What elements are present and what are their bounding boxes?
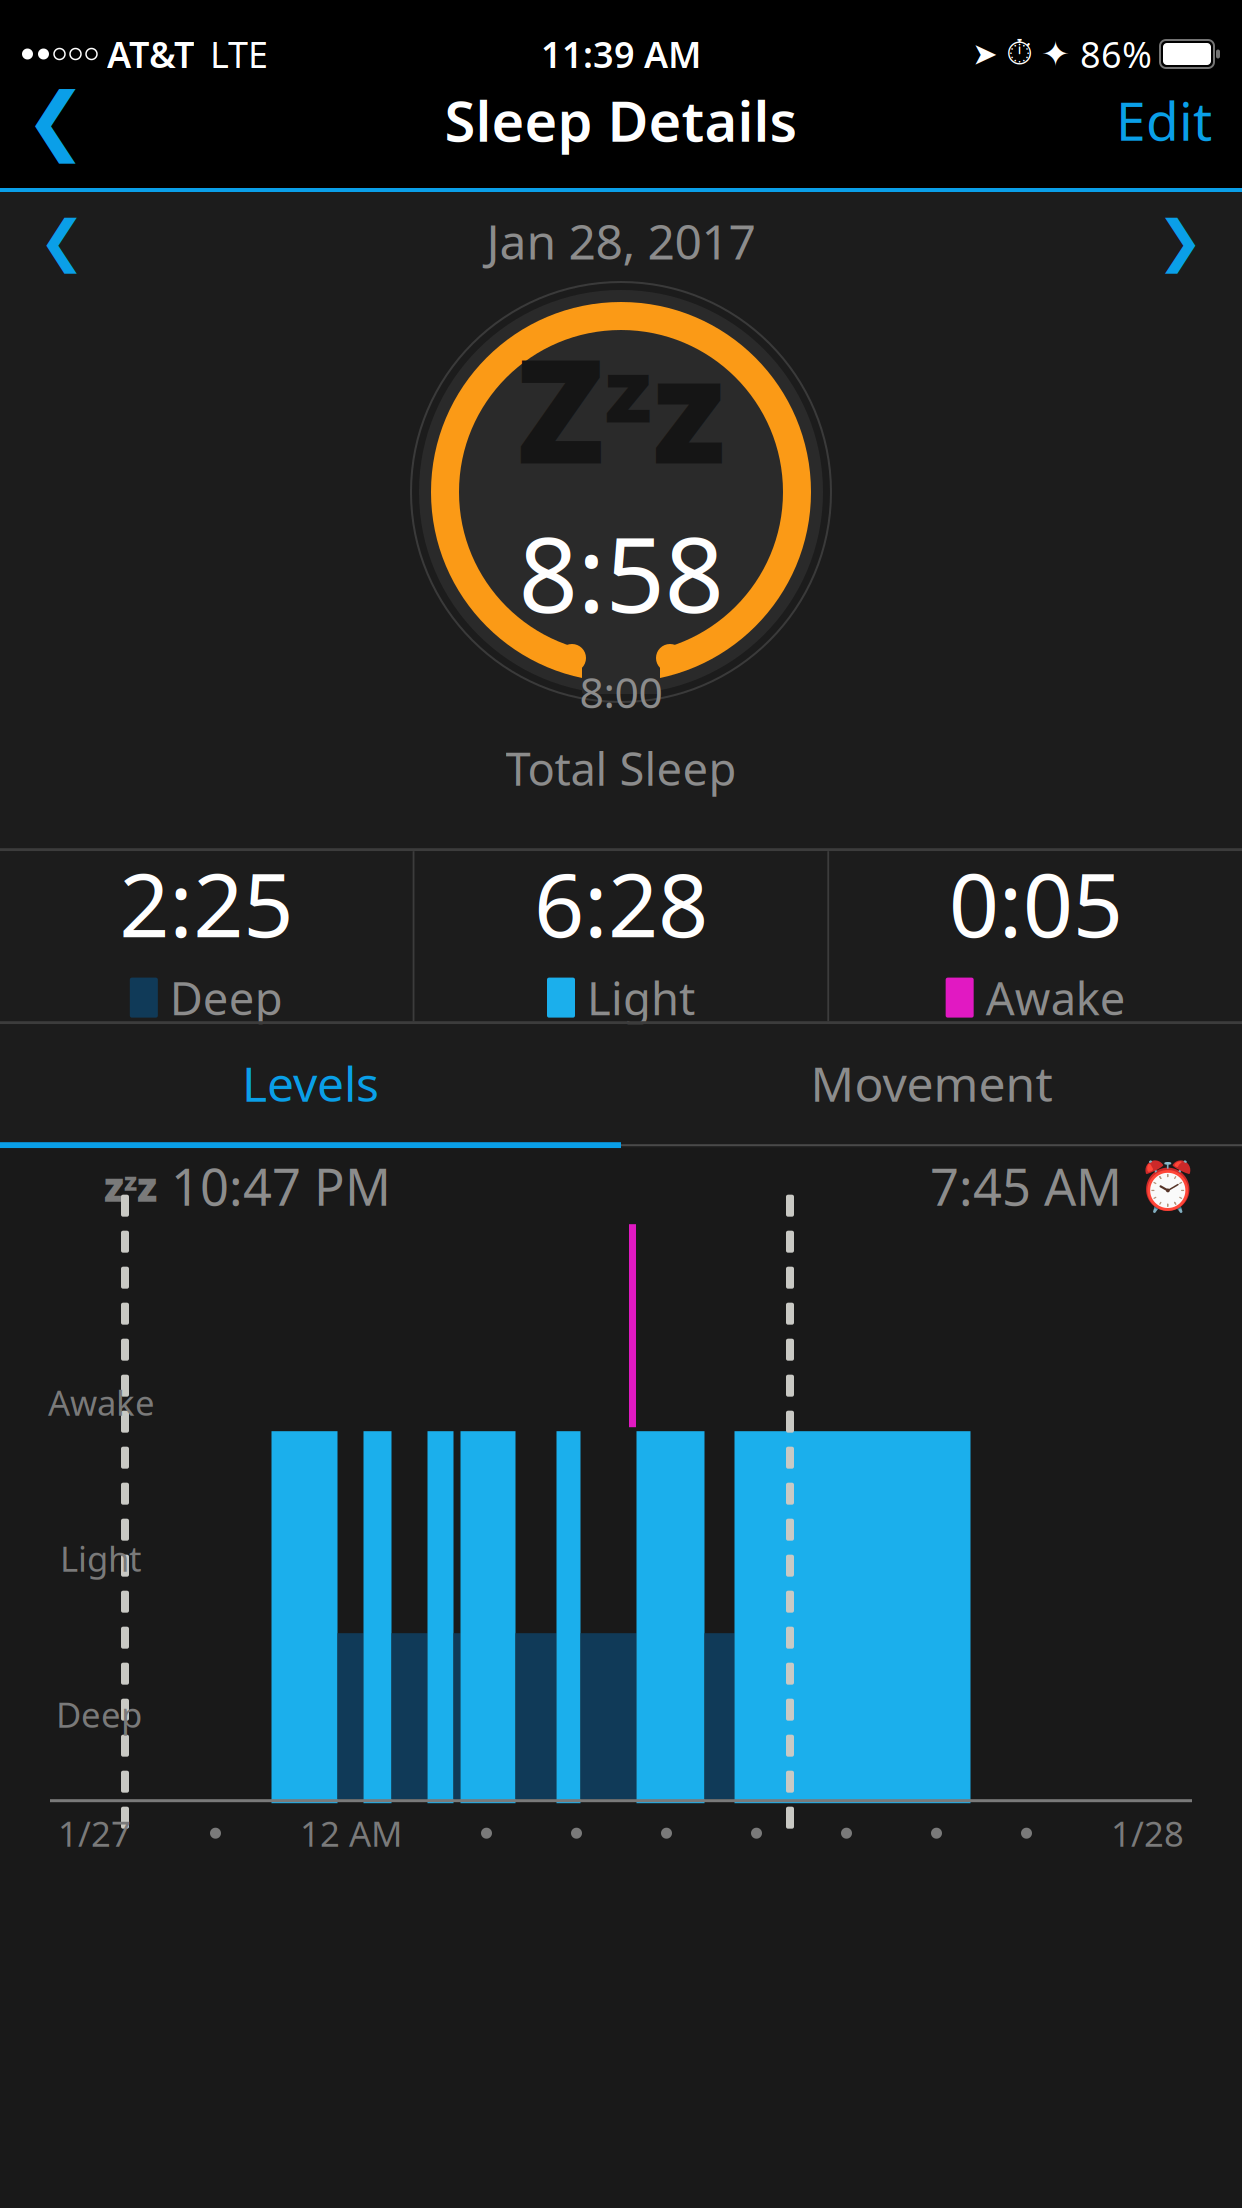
staticText: Zᶻz [516, 312, 725, 503]
staticText: Awake [48, 1379, 155, 1425]
staticText: Levels [242, 1051, 379, 1115]
staticText: LTE [210, 30, 268, 78]
button[interactable]: Next day [1132, 206, 1228, 276]
staticText: Sleep Details [444, 83, 797, 157]
staticText: Deep [170, 967, 283, 1028]
staticText: 10:47 PM [171, 1153, 391, 1220]
staticText: Light [60, 1535, 142, 1581]
staticText: 7:45 AM [930, 1153, 1122, 1220]
staticText: ❮ [24, 78, 87, 162]
staticText: ✦ [1041, 34, 1070, 74]
staticText: Light [587, 967, 695, 1028]
button[interactable]: 0:05 [829, 851, 1242, 1021]
staticText: 12 AM [300, 1810, 402, 1856]
staticText: Movement [810, 1051, 1052, 1115]
button[interactable]: Back [16, 76, 96, 164]
staticText: ➤ [972, 37, 998, 71]
staticText: 2:25 [119, 845, 293, 962]
staticText: Total Sleep [505, 738, 736, 798]
staticText: 8:00 [579, 663, 662, 720]
button[interactable]: 6:28 [415, 851, 827, 1021]
staticText: 1/28 [1111, 1810, 1184, 1856]
staticText: 0:05 [949, 845, 1123, 962]
button[interactable]: Previous day [14, 206, 110, 276]
staticText: 11:39 AM [541, 30, 701, 78]
staticText: 6:28 [534, 845, 708, 962]
staticText: Jan 28, 2017 [486, 209, 755, 273]
staticText: Edit [1116, 85, 1212, 155]
button[interactable]: Levels [0, 1024, 621, 1142]
button[interactable]: Movement [621, 1024, 1242, 1142]
staticText: ⏱ [1006, 37, 1033, 71]
staticText: 8:58 [518, 503, 723, 641]
staticText: zᶻz [104, 1160, 157, 1213]
staticText: Awake [986, 967, 1126, 1028]
button[interactable]: 2:25 [0, 851, 413, 1021]
staticText: 86% [1080, 30, 1152, 78]
staticText: AT&T [107, 30, 194, 78]
button[interactable]: Edit [1102, 76, 1226, 164]
staticText: ⏰ [1138, 1159, 1198, 1214]
staticText: ❯ [1156, 209, 1203, 273]
staticText: ❮ [38, 209, 85, 273]
staticText: 1/27 [58, 1810, 131, 1856]
staticText: Deep [56, 1691, 142, 1737]
